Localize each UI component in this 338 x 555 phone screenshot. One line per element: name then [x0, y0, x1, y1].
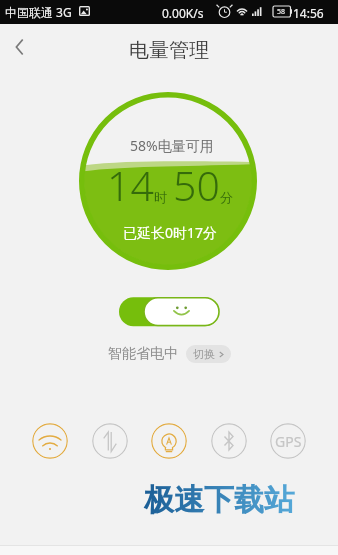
button[interactable]: Wifi — [32, 423, 68, 459]
staticText: 58%电量可用 — [130, 136, 214, 155]
staticText: 时 — [154, 189, 167, 205]
staticText: 14 — [107, 157, 154, 213]
button[interactable]: Sync — [92, 423, 128, 459]
staticText: 50 — [173, 157, 220, 213]
staticText: 0.00K/s — [162, 5, 204, 21]
staticText: 切换 — [193, 347, 215, 361]
button[interactable]: Back — [0, 27, 40, 67]
button[interactable]: Smart power saving switch — [118, 296, 220, 328]
button[interactable]: 切换 — [186, 345, 231, 363]
staticText: 电量管理 — [129, 38, 209, 63]
staticText: GPS — [275, 432, 302, 451]
staticText: 极速下载站 — [144, 481, 294, 519]
staticText: 分 — [220, 189, 233, 205]
button[interactable]: GPS — [270, 423, 306, 459]
staticText: 58 — [277, 7, 286, 17]
staticText: 已延长0时17分 — [123, 223, 218, 242]
button[interactable]: Bluetooth — [211, 423, 247, 459]
staticText: 智能省电中 — [108, 345, 178, 363]
button[interactable]: Brightness — [151, 423, 187, 459]
staticText: 14:56 — [293, 5, 324, 21]
staticText: 中国联通 3G — [5, 4, 72, 20]
